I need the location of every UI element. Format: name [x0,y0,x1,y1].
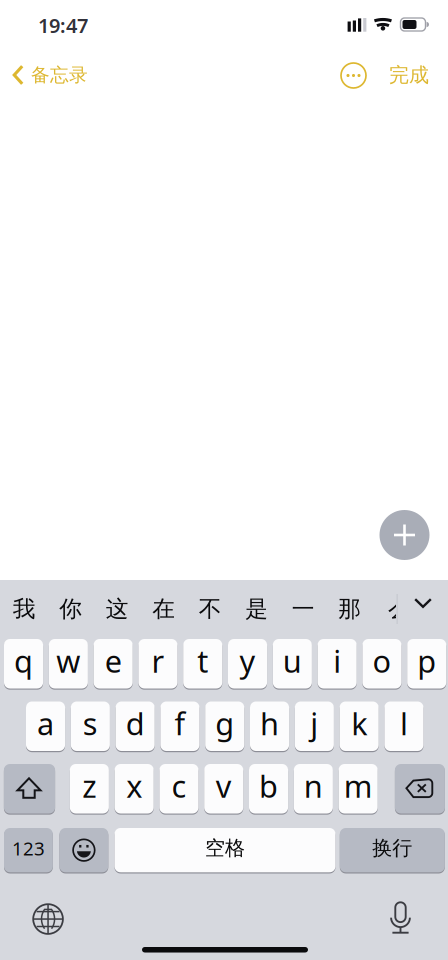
button[interactable]: More [331,53,376,98]
staticText: z [82,765,96,806]
button[interactable]: 我 [1,589,47,629]
staticText: u [283,640,302,681]
button[interactable]: a [26,701,65,752]
button[interactable]: b [249,764,288,815]
staticText: n [304,765,323,806]
staticText: 123 [12,836,45,861]
staticText: 19:47 [38,12,88,39]
staticText: p [417,640,436,681]
button[interactable]: 你 [47,589,94,629]
staticText: q [14,640,33,681]
staticText: m [344,765,373,806]
staticText: g [215,703,234,744]
staticText: 你 [59,595,82,623]
staticText: e [105,640,122,681]
staticText: 在 [152,595,175,623]
staticText: 不 [199,595,222,623]
button[interactable]: 换行 [340,828,445,873]
button[interactable]: 是 [233,589,280,629]
button[interactable]: z [70,764,109,815]
button[interactable]: y [228,639,267,690]
staticText: 那 [338,595,361,623]
staticText: 空格 [205,836,245,860]
button[interactable]: Emoji [59,828,108,873]
staticText: f [174,703,185,744]
staticText: s [83,703,98,744]
button[interactable]: g [205,701,244,752]
staticText: w [56,640,80,681]
button[interactable]: k [340,701,379,752]
button[interactable]: v [204,764,243,815]
button[interactable]: r [138,639,177,690]
staticText: l [400,703,408,744]
staticText: y [240,640,256,681]
button[interactable]: 一 [280,589,326,629]
button[interactable]: Delete [395,764,445,815]
staticText: 么 [388,595,411,623]
staticText: x [126,765,142,806]
button[interactable]: Shift [4,764,55,815]
button[interactable]: Dictate [379,891,422,944]
button[interactable]: f [160,701,199,752]
button[interactable]: 完成 [379,52,439,98]
button[interactable]: 备忘录 [0,52,102,98]
button[interactable]: i [318,639,357,690]
button[interactable]: d [116,701,155,752]
staticText: 完成 [389,63,429,87]
staticText: 备忘录 [31,63,88,86]
button[interactable]: w [49,639,88,690]
button[interactable]: n [294,764,333,815]
staticText: a [37,703,54,744]
staticText: i [333,640,341,681]
staticText: v [216,765,232,806]
staticText: 一 [292,595,315,623]
staticText: 我 [13,595,36,623]
button[interactable]: e [94,639,133,690]
button[interactable]: s [71,701,110,752]
button[interactable]: l [384,701,423,752]
staticText: t [197,640,208,681]
button[interactable]: 123 [4,828,53,873]
button[interactable]: h [250,701,289,752]
staticText: c [171,765,186,806]
staticText: 这 [106,595,129,623]
staticText: o [372,640,391,681]
button[interactable]: t [183,639,222,690]
button[interactable]: o [362,639,401,690]
button[interactable]: x [115,764,154,815]
staticText: 换行 [372,836,412,860]
button[interactable]: p [407,639,446,690]
button[interactable]: u [273,639,312,690]
button[interactable]: Add attachment [379,510,429,560]
staticText: r [151,640,164,681]
button[interactable]: Next keyboard [22,893,74,945]
button[interactable]: j [295,701,334,752]
button[interactable]: q [4,639,43,690]
staticText: d [126,703,145,744]
staticText: h [260,703,279,744]
staticText: k [351,703,367,744]
button[interactable]: 不 [187,589,233,629]
button[interactable]: 在 [140,589,187,629]
staticText: 是 [245,595,268,623]
staticText: j [310,703,318,744]
button[interactable]: m [339,764,378,815]
staticText: b [259,765,278,806]
button[interactable]: 空格 [114,828,335,873]
button[interactable]: More candidates [403,583,443,623]
button[interactable]: 这 [94,589,140,629]
button[interactable]: 那 [326,589,373,629]
button[interactable]: c [159,764,198,815]
